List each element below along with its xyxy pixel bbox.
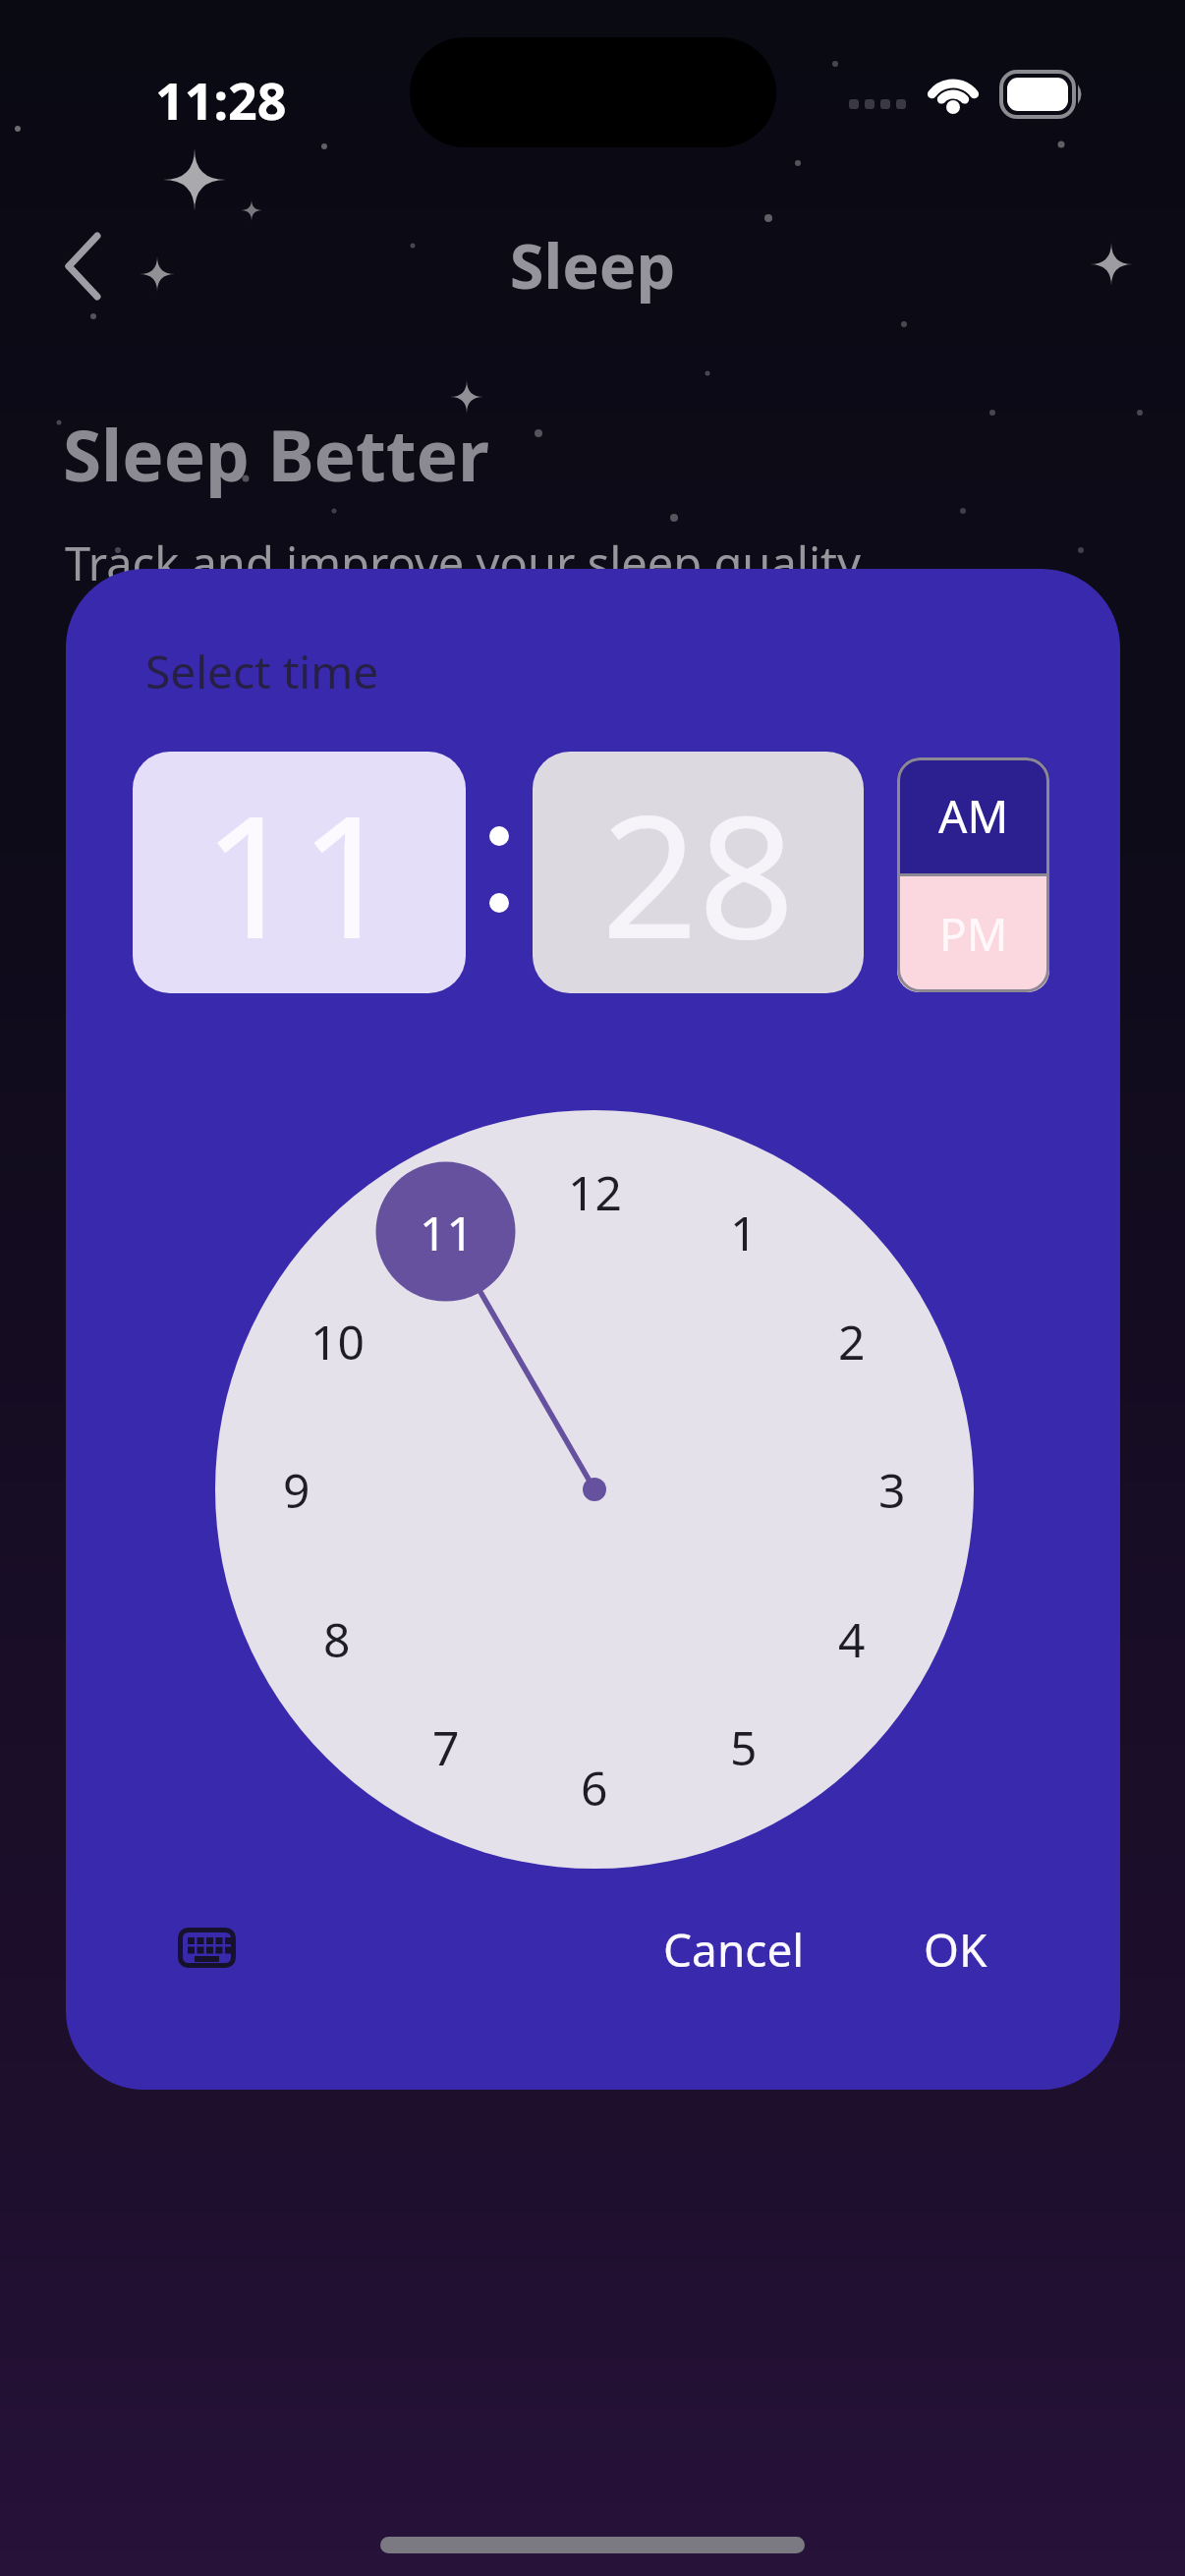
- button[interactable]: 11: [387, 1173, 505, 1291]
- button[interactable]: 6: [536, 1728, 653, 1846]
- button[interactable]: 11: [133, 752, 466, 993]
- staticText: Select time: [145, 641, 379, 702]
- button[interactable]: 28: [533, 752, 864, 993]
- staticText: 9: [283, 1458, 310, 1522]
- staticText: OK: [924, 1919, 987, 1981]
- staticText: Sleep: [0, 223, 1185, 308]
- button[interactable]: 4: [793, 1580, 911, 1698]
- button[interactable]: AM: [897, 757, 1049, 874]
- button[interactable]: Cancel: [616, 1900, 852, 1998]
- staticText: Track and improve your sleep quality.: [65, 532, 872, 594]
- staticText: 10: [310, 1310, 365, 1373]
- staticText: 12: [568, 1160, 622, 1224]
- button[interactable]: [47, 218, 141, 312]
- button[interactable]: 8: [278, 1580, 396, 1698]
- staticText: Cancel: [663, 1919, 805, 1981]
- staticText: AM: [938, 785, 1009, 847]
- button[interactable]: 12: [536, 1133, 653, 1251]
- button[interactable]: 7: [387, 1688, 505, 1806]
- button[interactable]: 5: [685, 1688, 803, 1806]
- staticText: 8: [323, 1607, 351, 1671]
- button[interactable]: PM: [897, 874, 1049, 992]
- staticText: 4: [838, 1607, 866, 1671]
- staticText: PM: [939, 903, 1008, 965]
- button[interactable]: 1: [685, 1173, 803, 1291]
- button[interactable]: 10: [278, 1282, 396, 1400]
- staticText: 11: [420, 1201, 474, 1264]
- button[interactable]: [164, 1905, 253, 1993]
- staticText: 3: [878, 1458, 906, 1522]
- button[interactable]: OK: [881, 1900, 1029, 1998]
- staticText: 11: [202, 757, 396, 987]
- staticText: 11:28: [155, 65, 287, 135]
- button[interactable]: 2: [793, 1282, 911, 1400]
- button[interactable]: 9: [238, 1430, 356, 1548]
- staticText: 1: [730, 1201, 758, 1264]
- staticText: 28: [601, 757, 795, 987]
- staticText: Sleep Better: [63, 407, 489, 502]
- staticText: 6: [581, 1756, 608, 1820]
- button[interactable]: 3: [833, 1430, 951, 1548]
- staticText: 7: [432, 1715, 460, 1779]
- staticText: 5: [730, 1715, 758, 1779]
- staticText: 2: [838, 1310, 866, 1373]
